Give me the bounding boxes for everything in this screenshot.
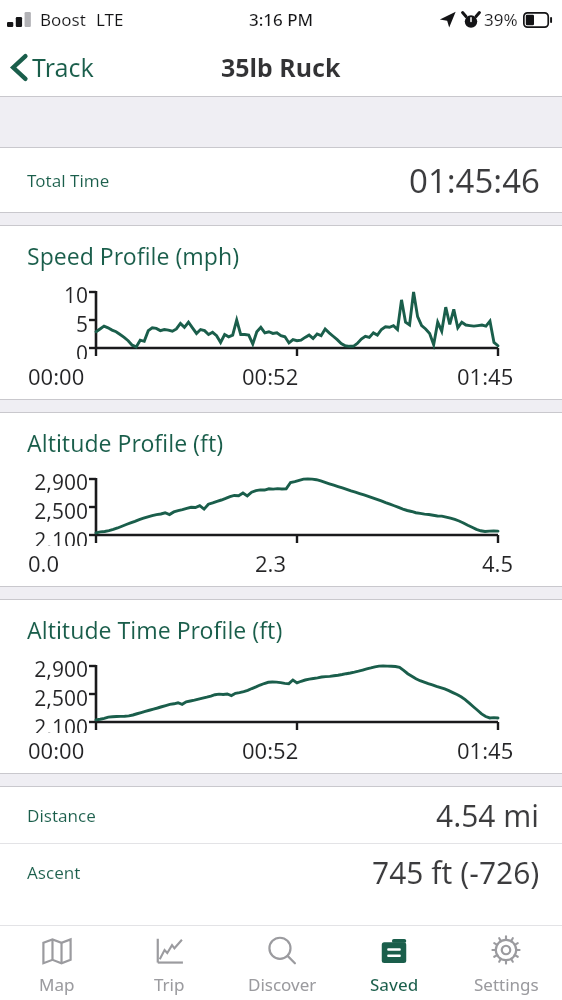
staticText: 0 — [75, 339, 88, 359]
button[interactable]: Saved — [338, 926, 450, 1000]
staticText: 2,100 — [34, 526, 88, 546]
staticText: 0.0 — [28, 548, 60, 578]
staticText: 35lb Ruck — [221, 50, 341, 84]
staticText: Boost — [40, 8, 86, 31]
staticText: Altitude Time Profile (ft) — [27, 614, 283, 645]
staticText: 39% — [484, 8, 518, 31]
staticText: LTE — [96, 8, 124, 31]
staticText: 01:45:46 — [409, 158, 540, 203]
button[interactable]: Trip — [113, 926, 226, 1000]
staticText: 4.54 mi — [436, 795, 540, 836]
staticText: Total Time — [27, 169, 110, 192]
button[interactable]: Altitude Profile (ft) — [0, 413, 562, 586]
button[interactable]: Discover — [226, 926, 338, 1000]
staticText: 2,500 — [34, 497, 88, 526]
staticText: 5 — [75, 310, 88, 339]
staticText: 00:52 — [242, 735, 299, 765]
button[interactable]: Total Time — [0, 148, 562, 212]
staticText: Track — [32, 50, 94, 84]
button[interactable]: Settings — [450, 926, 562, 1000]
staticText: Settings — [474, 973, 539, 996]
staticText: 2,900 — [34, 655, 88, 684]
staticText: 10 — [63, 281, 88, 310]
staticText: 01:45 — [457, 735, 514, 765]
button[interactable]: Ascent — [0, 844, 562, 900]
staticText: 3:16 PM — [249, 8, 314, 31]
staticText: Distance — [27, 804, 96, 827]
staticText: 00:52 — [242, 361, 299, 391]
button[interactable]: Distance — [0, 787, 562, 843]
staticText: 01:45 — [457, 361, 514, 391]
staticText: 2,900 — [34, 468, 88, 497]
staticText: Discover — [248, 973, 317, 996]
staticText: Trip — [154, 973, 185, 996]
staticText: 2,500 — [34, 684, 88, 713]
button[interactable]: Map — [0, 926, 113, 1000]
staticText: 2.3 — [255, 548, 287, 578]
button[interactable]: Speed Profile (mph) — [0, 226, 562, 399]
staticText: 745 ft (-726) — [372, 852, 540, 893]
staticText: 4.5 — [482, 548, 514, 578]
staticText: Speed Profile (mph) — [27, 240, 240, 271]
staticText: Saved — [370, 973, 419, 996]
button[interactable]: Track — [0, 42, 108, 92]
staticText: Ascent — [27, 861, 81, 884]
staticText: Altitude Profile (ft) — [27, 427, 224, 458]
staticText: 2,100 — [34, 713, 88, 733]
staticText: 00:00 — [28, 735, 85, 765]
button[interactable]: Altitude Time Profile (ft) — [0, 600, 562, 773]
staticText: 00:00 — [28, 361, 85, 391]
staticText: Map — [39, 973, 75, 996]
